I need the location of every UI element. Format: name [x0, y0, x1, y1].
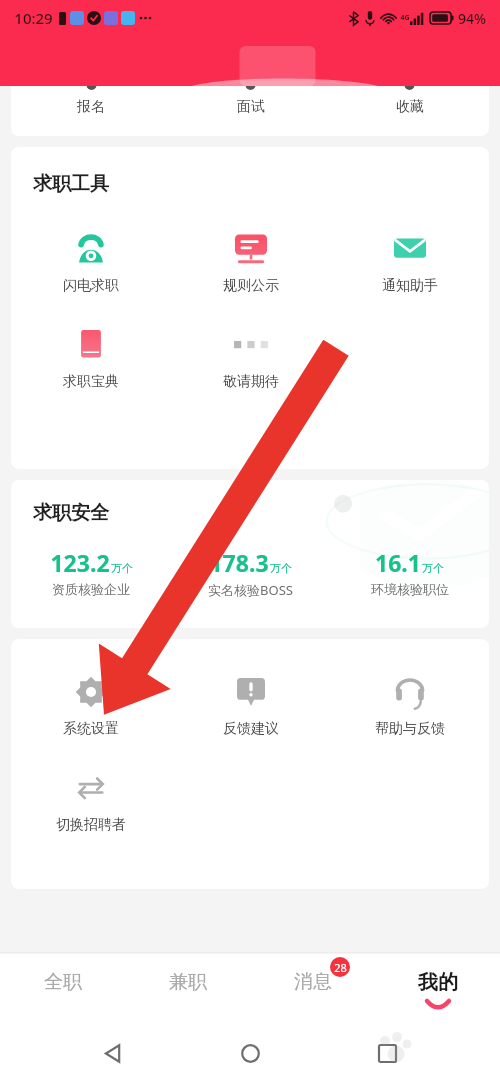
- staticText: 通知助手: [382, 277, 438, 295]
- staticText: 求职安全: [33, 501, 109, 525]
- button[interactable]: 闪电求职: [11, 229, 171, 295]
- button[interactable]: 系统设置: [11, 672, 171, 738]
- staticText: 敬请期待: [223, 373, 279, 391]
- staticText: 16.1: [375, 547, 421, 578]
- staticText: 万个: [111, 561, 133, 575]
- button[interactable]: 兼职: [125, 953, 250, 1023]
- staticText: 全职: [44, 970, 82, 994]
- staticText: 切换招聘者: [56, 816, 126, 834]
- button[interactable]: 收藏: [330, 86, 489, 136]
- staticText: 123.2: [50, 547, 110, 578]
- button[interactable]: 报名: [11, 86, 171, 136]
- staticText: 我的: [418, 970, 458, 995]
- button[interactable]: Recents: [363, 1029, 411, 1077]
- button[interactable]: 178.3: [171, 547, 330, 599]
- staticText: 报名: [77, 98, 105, 116]
- button[interactable]: 切换招聘者: [11, 768, 170, 834]
- button[interactable]: Back: [89, 1029, 137, 1077]
- staticText: 资质核验企业: [52, 581, 130, 597]
- staticText: 消息: [294, 970, 332, 994]
- button[interactable]: Home: [226, 1029, 274, 1077]
- staticText: 环境核验职位: [371, 581, 449, 597]
- button[interactable]: 求职宝典: [11, 325, 171, 391]
- button[interactable]: 面试: [171, 86, 330, 136]
- staticText: 求职宝典: [63, 373, 119, 391]
- staticText: 万个: [270, 561, 292, 575]
- staticText: 系统设置: [63, 720, 119, 738]
- button[interactable]: 全职: [0, 953, 125, 1023]
- staticText: 面试: [237, 98, 265, 116]
- button[interactable]: 敬请期待: [171, 325, 330, 391]
- button[interactable]: 123.2: [11, 547, 171, 597]
- button[interactable]: 16.1: [330, 547, 489, 597]
- staticText: 实名核验BOSS: [208, 581, 293, 599]
- staticText: 94%: [458, 9, 486, 28]
- staticText: 4G: [400, 13, 410, 23]
- button[interactable]: 消息: [250, 953, 375, 1023]
- staticText: 反馈建议: [223, 720, 279, 738]
- button[interactable]: 通知助手: [330, 229, 489, 295]
- button[interactable]: 我的: [375, 953, 500, 1023]
- button[interactable]: 反馈建议: [171, 672, 330, 738]
- staticText: 帮助与反馈: [375, 720, 445, 738]
- staticText: 收藏: [396, 98, 424, 116]
- staticText: 规则公示: [223, 277, 279, 295]
- staticText: 闪电求职: [63, 277, 119, 295]
- staticText: 万个: [422, 561, 444, 575]
- staticText: 28: [334, 960, 347, 975]
- button[interactable]: 规则公示: [171, 229, 330, 295]
- staticText: 求职工具: [33, 172, 109, 196]
- staticText: 10:29: [14, 8, 53, 28]
- button[interactable]: 帮助与反馈: [330, 672, 489, 738]
- staticText: 兼职: [169, 970, 207, 994]
- staticText: 178.3: [209, 547, 269, 578]
